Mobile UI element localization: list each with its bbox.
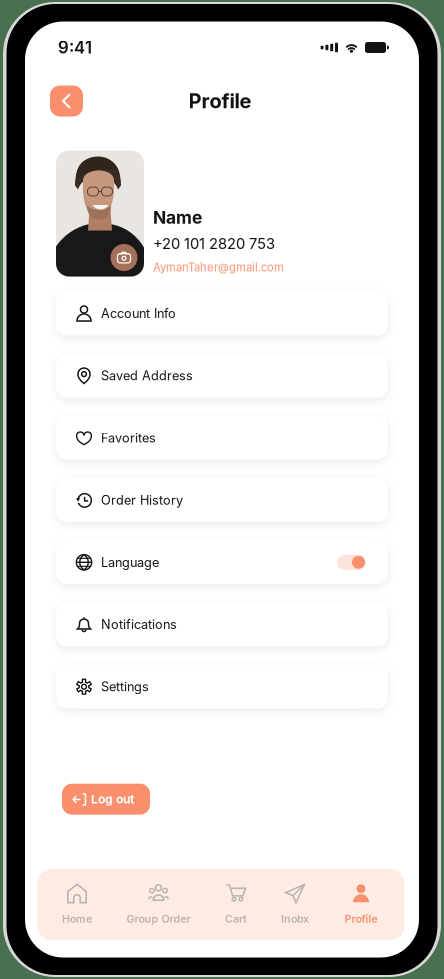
staticText: Profile [344, 912, 377, 925]
staticText: Inobx [281, 912, 309, 925]
button[interactable]: Notifications [56, 602, 388, 646]
staticText: Favorites [101, 430, 156, 445]
staticText: Order History [101, 492, 183, 508]
button[interactable]: Profile [343, 869, 378, 940]
button[interactable]: Language [56, 540, 388, 584]
staticText: Name [153, 207, 202, 228]
button[interactable]: Log out [62, 784, 150, 815]
button[interactable]: Cart [225, 869, 246, 940]
staticText: Profile [188, 89, 251, 113]
button[interactable]: Group Order [126, 869, 190, 940]
button[interactable]: Favorites [56, 416, 388, 460]
staticText: AymanTaher@gmail.com [153, 261, 284, 274]
button[interactable]: Account Info [56, 291, 388, 335]
button[interactable]: Home [62, 869, 91, 940]
staticText: Settings [101, 679, 149, 694]
staticText: Cart [225, 912, 247, 925]
staticText: Group Order [126, 912, 190, 925]
staticText: Log out [91, 792, 134, 806]
staticText: 9:41 [58, 37, 92, 58]
staticText: Home [62, 912, 92, 925]
button[interactable]: Saved Address [56, 354, 388, 398]
staticText: Notifications [101, 617, 177, 632]
button[interactable]: Inobx [281, 869, 308, 940]
staticText: Language [101, 555, 159, 570]
staticText: Saved Address [101, 368, 193, 383]
staticText: Account Info [101, 306, 176, 321]
button[interactable]: Settings [56, 665, 388, 709]
button[interactable]: Order History [56, 478, 388, 522]
staticText: +20 101 2820 753 [153, 235, 275, 252]
button[interactable]: Back [50, 85, 83, 116]
